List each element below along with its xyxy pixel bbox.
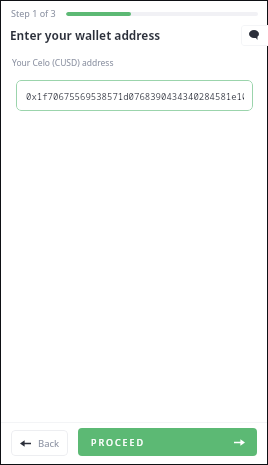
button[interactable]: PROCEED — [78, 428, 257, 456]
button[interactable]: Back — [11, 430, 68, 456]
staticText: Enter your wallet address — [10, 27, 161, 43]
button[interactable]: 0x1f70675569538571d0768390434340284581e1… — [16, 80, 253, 111]
staticText: PROCEED — [91, 436, 145, 448]
staticText: Step 1 of 3 — [11, 7, 56, 19]
button[interactable]: Chat support — [241, 25, 268, 46]
staticText: Back — [38, 437, 60, 450]
staticText: 0x1f70675569538571d0768390434340284581e1… — [26, 90, 244, 102]
staticText: Your Celo (CUSD) address — [12, 57, 114, 69]
